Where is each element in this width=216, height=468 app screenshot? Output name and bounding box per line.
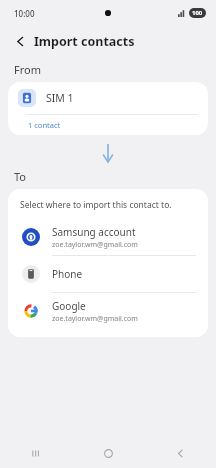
button[interactable]: 1 contact [8,115,208,135]
button[interactable]: Samsung account [8,219,208,255]
button[interactable]: Back [144,438,216,468]
staticText: zoe.taylor.wm@gmail.com [52,314,138,324]
button[interactable]: SIM 1 [8,82,208,114]
staticText: To [14,169,27,184]
button[interactable]: Google [8,293,208,329]
button[interactable]: Recents [0,438,72,468]
staticText: Google [52,299,86,313]
staticText: Phone [52,267,83,281]
button[interactable]: Phone [8,256,208,292]
staticText: 100 [192,9,203,17]
staticText: Select where to import this contact to. [20,199,172,211]
staticText: Import contacts [34,33,135,50]
staticText: 10:00 [14,8,35,19]
staticText: From [14,62,41,77]
staticText: 1 contact [28,120,61,130]
staticText: SIM 1 [46,91,74,105]
button[interactable]: Back [10,31,30,51]
staticText: Samsung account [52,225,136,239]
button[interactable]: Home [72,438,144,468]
staticText: zoe.taylor.wm@gmail.com [52,240,138,250]
